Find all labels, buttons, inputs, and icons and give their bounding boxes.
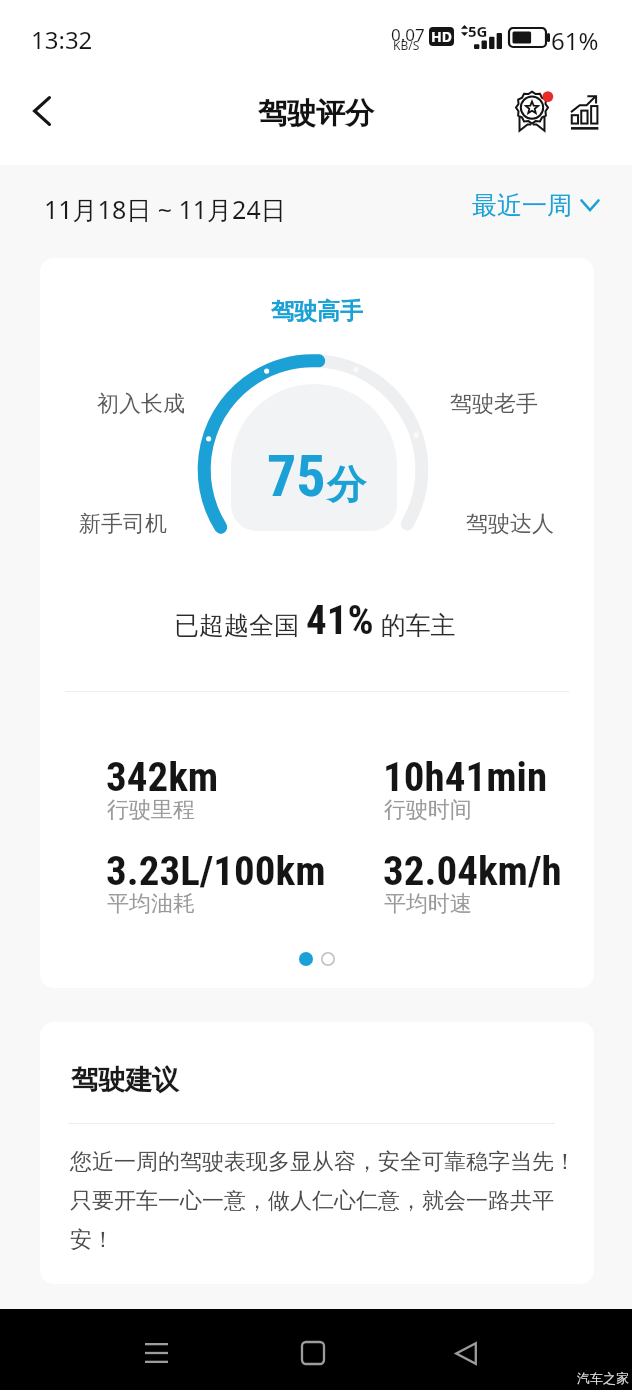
staticText: 初入长成 [97,390,185,418]
staticText: HD [431,27,452,46]
staticText: 分 [327,460,366,509]
staticText: 11月18日 ~ 11月24日 [44,192,286,226]
staticText: 汽车之家 [577,1370,629,1386]
staticText: 10h41min [383,753,548,801]
staticText: 驾驶达人 [466,510,554,538]
staticText: 5G [468,21,488,41]
staticText: 32.04km/h [383,847,562,895]
staticText: 您近一周的驾驶表现多显从容，安全可靠稳字当先！ 只要开车一心一意，做人仁心仁意，… [70,1148,590,1254]
staticText: 75 [267,442,326,510]
staticText: KB/S [393,37,420,53]
staticText: 新手司机 [79,510,167,538]
staticText: 41% [306,596,374,644]
button[interactable]: Home [281,1321,345,1385]
button[interactable]: Recent apps [124,1321,188,1385]
staticText: 3.23L/100km [106,847,326,895]
button[interactable]: Achievements badge [504,80,564,140]
staticText: 342km [106,753,219,801]
staticText: 13:32 [31,23,93,56]
staticText: 0.07 [391,23,425,46]
staticText: 驾驶老手 [450,390,538,418]
staticText: 驾驶高手 [271,297,363,326]
button[interactable]: Statistics [560,81,620,141]
staticText: 已超越全国 [174,607,306,641]
staticText: 驾驶建议 [71,1063,179,1097]
staticText: 平均油耗 [107,890,195,918]
staticText: 61% [551,24,599,57]
button[interactable]: Back [14,83,70,139]
staticText: 平均时速 [384,890,472,918]
staticText: 最近一周 [472,190,572,221]
staticText: 行驶里程 [107,796,195,824]
staticText: 的车主 [374,607,456,641]
staticText: 行驶时间 [384,796,472,824]
staticText: 驾驶评分 [258,95,374,132]
button[interactable]: Back [434,1321,498,1385]
button[interactable]: 最近一周 [464,184,608,227]
